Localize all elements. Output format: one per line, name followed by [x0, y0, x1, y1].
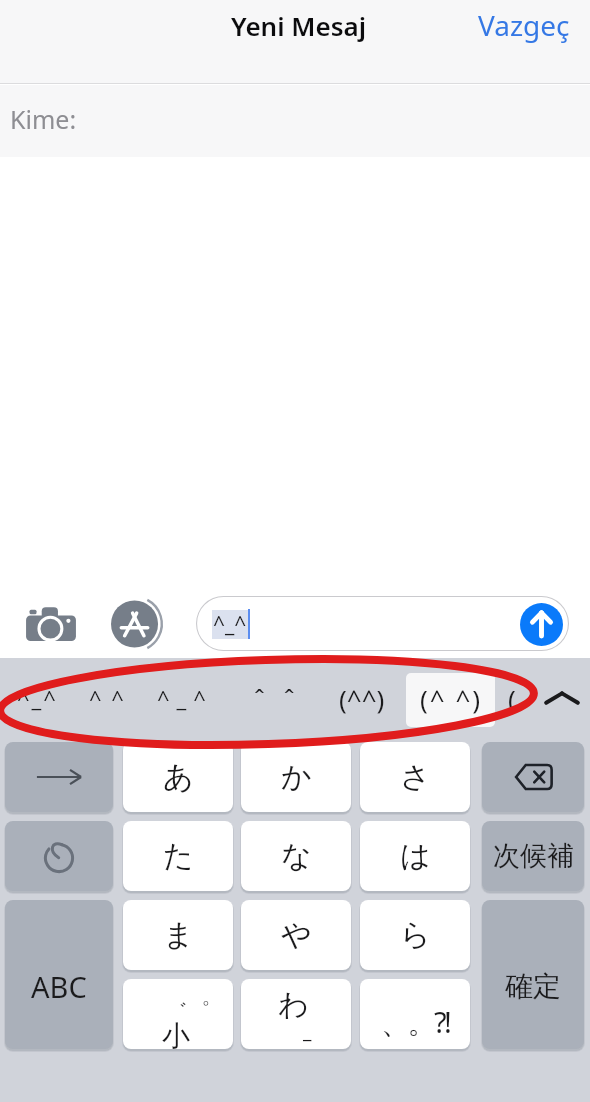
button[interactable]: や — [241, 900, 351, 970]
button[interactable]: Next character — [5, 742, 113, 812]
button[interactable]: ( — [500, 658, 524, 738]
staticText: 小 — [162, 1018, 190, 1049]
button[interactable]: ^_^ — [150, 658, 213, 738]
staticText: ( — [508, 681, 516, 716]
button[interactable]: (^ ^) — [413, 658, 487, 738]
staticText: な — [281, 837, 312, 875]
staticText: さ — [400, 758, 431, 796]
staticText: ˆ ˆ — [254, 681, 301, 716]
button[interactable]: Undo — [5, 821, 113, 891]
button[interactable]: 確定 — [482, 900, 584, 1049]
button[interactable]: Vazgeç — [466, 0, 586, 52]
staticText: や — [281, 916, 312, 954]
staticText: ら — [400, 916, 431, 954]
staticText: か — [281, 758, 312, 796]
button[interactable]: Send — [520, 603, 563, 646]
button[interactable]: は — [360, 821, 470, 891]
button[interactable]: Kime: — [0, 85, 590, 157]
staticText: ま — [163, 916, 194, 954]
staticText: (^^) — [339, 681, 385, 716]
staticText: 次候補 — [493, 839, 574, 873]
button[interactable]: ^_^ — [13, 658, 60, 738]
button[interactable]: な — [241, 821, 351, 891]
staticText: た — [163, 837, 194, 875]
staticText: ^ ^ — [89, 683, 126, 713]
button[interactable]: さ — [360, 742, 470, 812]
staticText: あ — [163, 758, 194, 796]
button[interactable]: た — [123, 821, 233, 891]
staticText: _ — [303, 1018, 312, 1044]
button[interactable]: App Store — [105, 600, 161, 648]
staticText: 、。?! — [381, 1002, 450, 1042]
staticText: Vazgeç — [478, 6, 570, 44]
staticText: ^_^ — [157, 683, 213, 713]
button[interactable]: ABC — [5, 900, 113, 1049]
button[interactable]: Expand suggestions — [537, 658, 587, 738]
button[interactable]: ら — [360, 900, 470, 970]
staticText: は — [400, 837, 431, 875]
button[interactable]: Small letters and marks — [123, 979, 233, 1049]
staticText: ABC — [31, 967, 87, 1006]
button[interactable]: wa — [241, 979, 351, 1049]
staticText: Yeni Mesaj — [231, 8, 367, 43]
staticText: わ — [278, 986, 309, 1024]
staticText: ^_^ — [17, 683, 58, 713]
button[interactable]: Punctuation — [360, 979, 470, 1049]
staticText: ゛゜ — [165, 998, 211, 1026]
button[interactable]: か — [241, 742, 351, 812]
button[interactable]: 次候補 — [482, 821, 584, 891]
button[interactable]: あ — [123, 742, 233, 812]
button[interactable]: Backspace — [482, 742, 584, 812]
button[interactable]: ˆ ˆ — [248, 658, 301, 738]
staticText: (^ ^) — [420, 681, 483, 716]
button[interactable]: ま — [123, 900, 233, 970]
button[interactable]: ^ ^ — [83, 658, 129, 738]
staticText: Kime: — [10, 102, 77, 136]
button[interactable]: Camera — [22, 601, 80, 645]
staticText: 確定 — [505, 969, 561, 1004]
staticText: ^_^ — [213, 610, 247, 639]
button[interactable]: (^^) — [333, 658, 391, 738]
button[interactable]: ^_^ — [196, 596, 569, 651]
